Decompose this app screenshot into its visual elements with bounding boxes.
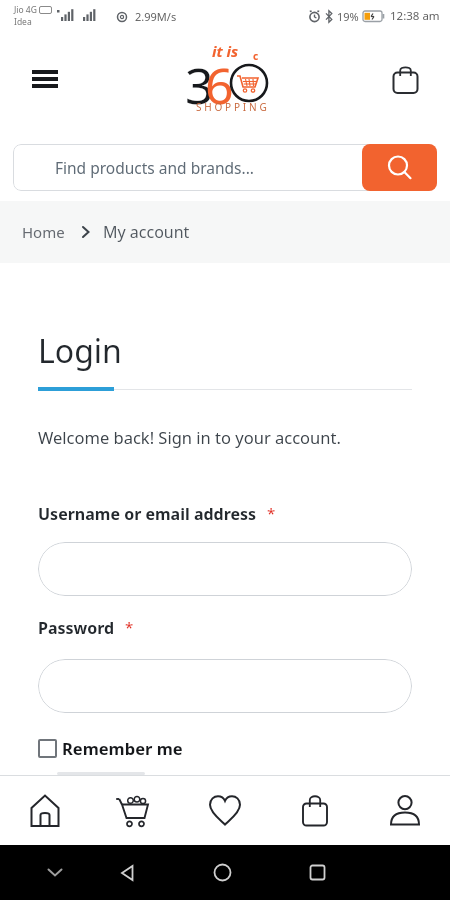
button[interactable] [213, 863, 232, 882]
staticText: 6 [205, 51, 234, 119]
staticText: My account [103, 221, 190, 243]
button[interactable] [180, 776, 270, 845]
button[interactable] [270, 776, 360, 845]
button[interactable] [309, 864, 326, 881]
button[interactable]: Remember me [38, 737, 183, 759]
staticText: Find products and brands... [55, 157, 254, 178]
button[interactable] [392, 64, 419, 94]
staticText: 19% [337, 9, 359, 24]
staticText: it is [212, 41, 239, 61]
staticText: Login [38, 329, 122, 373]
staticText: Idea [14, 16, 32, 28]
staticText: Home [22, 222, 65, 242]
staticText: Password [38, 617, 115, 639]
button[interactable] [38, 659, 412, 713]
button[interactable] [38, 542, 412, 596]
staticText: c [253, 49, 259, 63]
staticText: SHOPPING [196, 100, 270, 114]
button[interactable] [32, 70, 58, 88]
button[interactable] [90, 776, 180, 845]
staticText: 3 [185, 51, 214, 119]
button[interactable]: Home [22, 222, 65, 242]
staticText: * [267, 503, 276, 523]
button[interactable] [0, 776, 90, 845]
button[interactable] [362, 144, 437, 191]
button[interactable] [119, 864, 137, 882]
staticText: * [125, 617, 134, 637]
button[interactable] [360, 776, 450, 845]
staticText: Username or email address [38, 503, 257, 525]
staticText: 12:38 am [390, 8, 440, 24]
button[interactable] [47, 868, 63, 877]
staticText: Jio 4G [14, 4, 37, 16]
button[interactable]: Find products and brands... [13, 144, 437, 191]
staticText: 2.99M/s [135, 9, 177, 24]
staticText: Welcome back! Sign in to your account. [38, 426, 341, 448]
staticText: Remember me [62, 737, 183, 759]
